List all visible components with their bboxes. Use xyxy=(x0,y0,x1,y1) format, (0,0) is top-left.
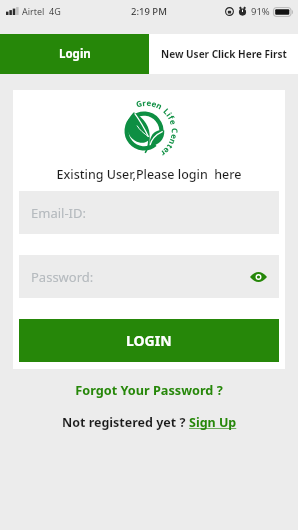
button[interactable]: Show password xyxy=(247,266,269,288)
staticText: Airtel xyxy=(22,5,45,17)
staticText: LOGIN xyxy=(126,331,172,350)
button[interactable]: New User Click Here First xyxy=(149,34,298,74)
button[interactable]: Sign Up xyxy=(189,414,237,431)
staticText: Email-ID: xyxy=(31,204,86,222)
button[interactable]: Login xyxy=(0,34,149,74)
staticText: Not registered yet ? xyxy=(62,414,189,431)
staticText: New User Click Here First xyxy=(161,47,287,61)
button[interactable]: LOGIN xyxy=(19,319,279,362)
staticText: 2:19 PM xyxy=(131,5,167,18)
staticText: 4G xyxy=(49,5,61,17)
button[interactable]: Password: xyxy=(19,255,279,298)
staticText: Password: xyxy=(31,268,94,286)
button[interactable]: Email-ID: xyxy=(19,191,279,234)
button[interactable]: Forgot Your Password ? xyxy=(0,381,298,398)
staticText: 91% xyxy=(251,5,270,18)
staticText: Login xyxy=(59,46,91,62)
staticText: Existing User,Please login here xyxy=(13,166,285,183)
